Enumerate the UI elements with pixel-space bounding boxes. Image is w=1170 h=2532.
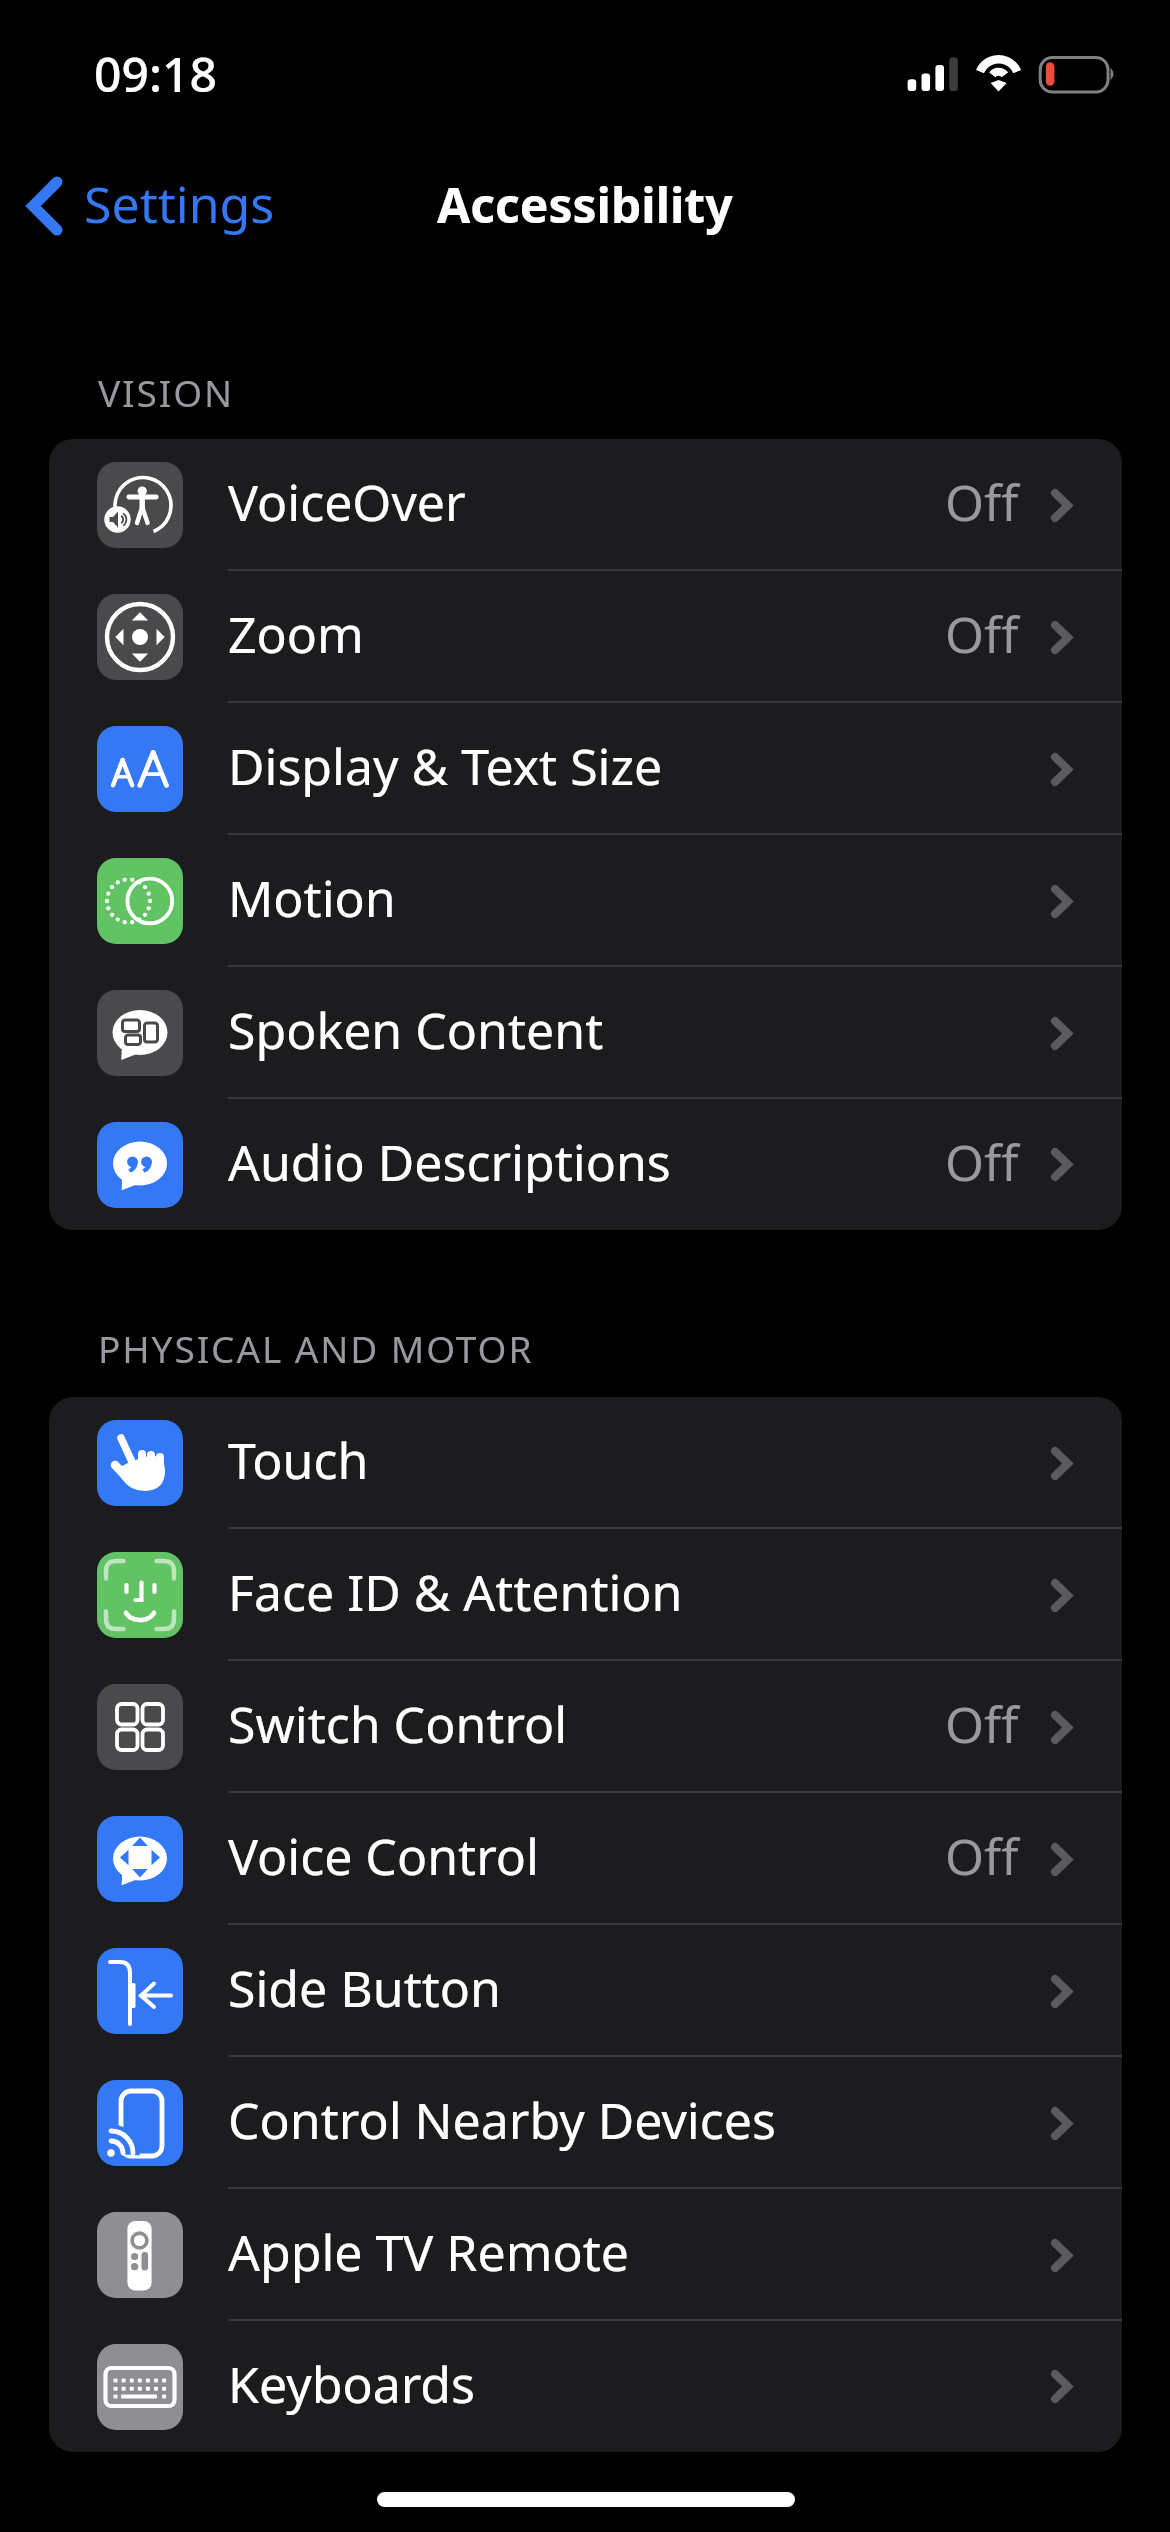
button[interactable]: Voice Control xyxy=(49,1793,1122,1925)
button[interactable]: Switch Control xyxy=(49,1661,1122,1793)
button[interactable]: Back to Settings xyxy=(17,160,275,252)
button[interactable]: Keyboards xyxy=(49,2321,1122,2452)
staticText: Off xyxy=(945,1128,1019,1196)
staticText: Off xyxy=(945,600,1019,668)
button[interactable]: VoiceOver xyxy=(49,439,1122,571)
button[interactable]: Spoken Content xyxy=(49,967,1122,1099)
staticText: Keyboards xyxy=(228,2350,476,2418)
staticText: Audio Descriptions xyxy=(228,1128,671,1196)
button[interactable]: Display & Text Size xyxy=(49,703,1122,835)
staticText: Touch xyxy=(228,1426,369,1494)
button[interactable]: Apple TV Remote xyxy=(49,2189,1122,2321)
staticText: Zoom xyxy=(228,600,364,668)
button[interactable]: Touch xyxy=(49,1397,1122,1529)
staticText: Face ID & Attention xyxy=(228,1558,683,1626)
staticText: Off xyxy=(945,1822,1019,1890)
staticText: Off xyxy=(945,468,1019,536)
button[interactable]: Side Button xyxy=(49,1925,1122,2057)
button[interactable]: Face ID & Attention xyxy=(49,1529,1122,1661)
staticText: Settings xyxy=(84,170,275,238)
staticText: Spoken Content xyxy=(228,996,604,1064)
staticText: Control Nearby Devices xyxy=(228,2086,776,2154)
staticText: PHYSICAL AND MOTOR xyxy=(98,1323,534,1373)
staticText: Off xyxy=(945,1690,1019,1758)
staticText: VISION xyxy=(98,367,235,417)
button[interactable]: Motion xyxy=(49,835,1122,967)
button[interactable]: Audio Descriptions xyxy=(49,1099,1122,1230)
staticText: VoiceOver xyxy=(228,468,466,536)
staticText: Display & Text Size xyxy=(228,732,663,800)
staticText: Switch Control xyxy=(228,1690,568,1758)
staticText: Motion xyxy=(228,864,396,932)
staticText: 09:18 xyxy=(94,41,217,106)
button[interactable]: Control Nearby Devices xyxy=(49,2057,1122,2189)
staticText: Apple TV Remote xyxy=(228,2218,629,2286)
staticText: Voice Control xyxy=(228,1822,539,1890)
staticText: Accessibility xyxy=(437,172,733,237)
staticText: Side Button xyxy=(228,1954,501,2022)
button[interactable]: Zoom xyxy=(49,571,1122,703)
